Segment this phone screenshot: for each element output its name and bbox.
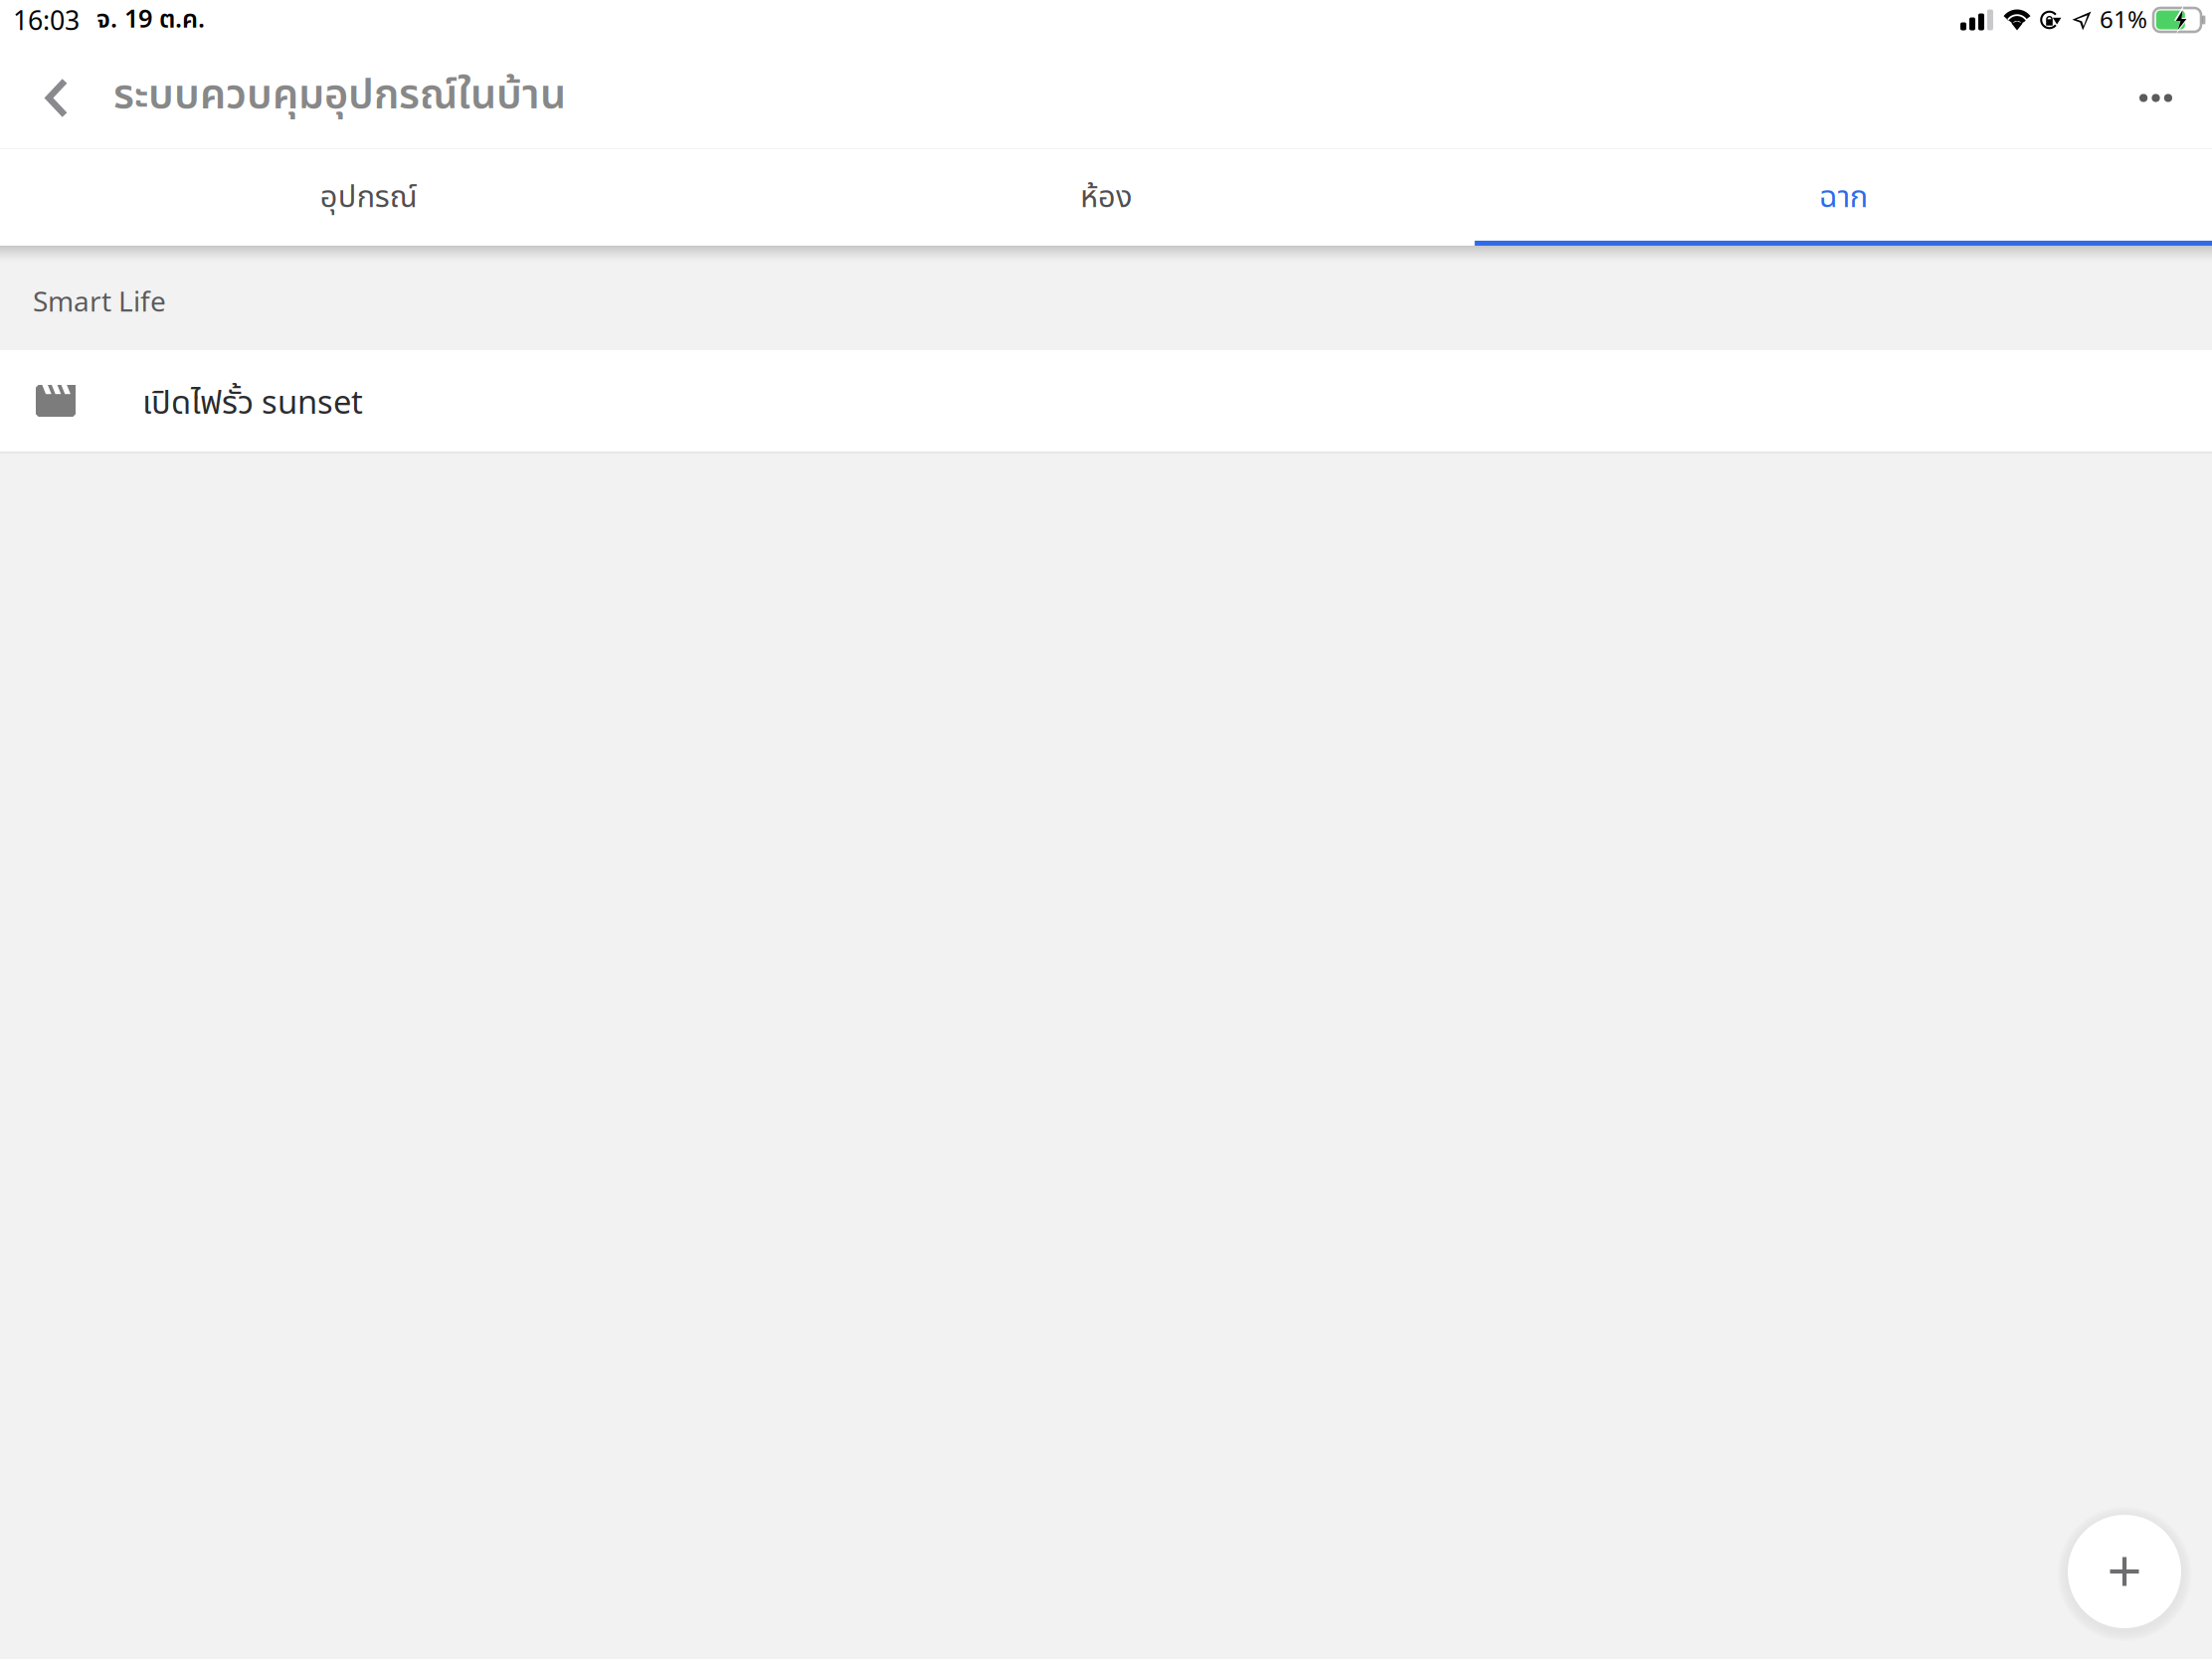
button[interactable]: More options	[2100, 48, 2212, 148]
button[interactable]: อุปกรณ์	[0, 149, 737, 241]
staticText: 61%	[2100, 3, 2147, 35]
button[interactable]: Add scene	[2055, 1502, 2194, 1641]
staticText: ฉาก	[1819, 175, 1868, 221]
staticText: อุปกรณ์	[320, 175, 417, 221]
button[interactable]: เปิดไฟรั้ว sunset	[0, 350, 2212, 452]
staticText: ห้อง	[1080, 175, 1132, 221]
button[interactable]: Back	[0, 48, 113, 148]
staticText: ระบบควบคุมอุปกรณ์ในบ้าน	[113, 65, 566, 127]
button[interactable]: ฉาก	[1475, 149, 2212, 241]
button[interactable]: ห้อง	[737, 149, 1475, 241]
staticText: เปิดไฟรั้ว sunset	[142, 379, 363, 428]
staticText: 16:03	[13, 2, 80, 37]
staticText: จ. 19 ต.ค.	[96, 1, 205, 39]
staticText: Smart Life	[33, 282, 166, 319]
